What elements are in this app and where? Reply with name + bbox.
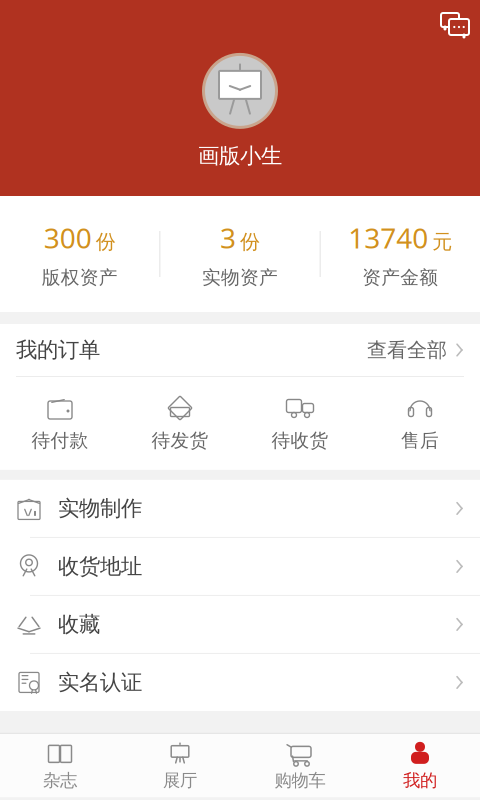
button[interactable]: 收货地址 [0, 538, 480, 596]
button[interactable]: 实名认证 [0, 654, 480, 711]
staticText: 13740 [348, 219, 428, 256]
button[interactable]: 待收货 [240, 391, 360, 456]
staticText: 画版小生 [198, 143, 282, 169]
staticText: 资产金额 [362, 266, 438, 289]
staticText: 元 [432, 229, 452, 254]
staticText: 300 [44, 219, 92, 256]
staticText: 展厅 [163, 770, 197, 791]
staticText: 份 [240, 229, 260, 254]
staticText: 收货地址 [58, 553, 142, 579]
staticText: 售后 [401, 429, 439, 452]
button[interactable]: 待付款 [0, 391, 120, 456]
staticText: 实名认证 [58, 669, 142, 695]
button[interactable]: 待发货 [120, 391, 240, 456]
staticText: 待发货 [151, 429, 208, 452]
staticText: 3 [220, 219, 236, 256]
staticText: 杂志 [43, 770, 77, 791]
staticText: 待付款 [31, 429, 88, 452]
button[interactable]: 我的 [360, 734, 480, 797]
button[interactable]: 售后 [360, 391, 480, 456]
button[interactable]: 我的订单 [0, 324, 480, 376]
staticText: 实物制作 [58, 495, 142, 521]
staticText: 购物车 [274, 770, 325, 791]
staticText: 我的 [403, 770, 437, 791]
button[interactable]: 收藏 [0, 596, 480, 654]
staticText: 份 [96, 229, 116, 254]
staticText: 待收货 [271, 429, 328, 452]
button[interactable]: 展厅 [120, 734, 240, 797]
button[interactable]: 杂志 [0, 734, 120, 797]
staticText: 收藏 [58, 611, 100, 637]
button[interactable]: 购物车 [240, 734, 360, 797]
staticText: 版权资产 [42, 266, 118, 289]
staticText: 我的订单 [16, 337, 100, 363]
button[interactable]: Profile photo [202, 53, 278, 129]
staticText: 查看全部 [367, 338, 447, 362]
button[interactable]: Messages [430, 0, 480, 48]
staticText: 实物资产 [202, 266, 278, 289]
button[interactable]: 实物制作 [0, 480, 480, 538]
